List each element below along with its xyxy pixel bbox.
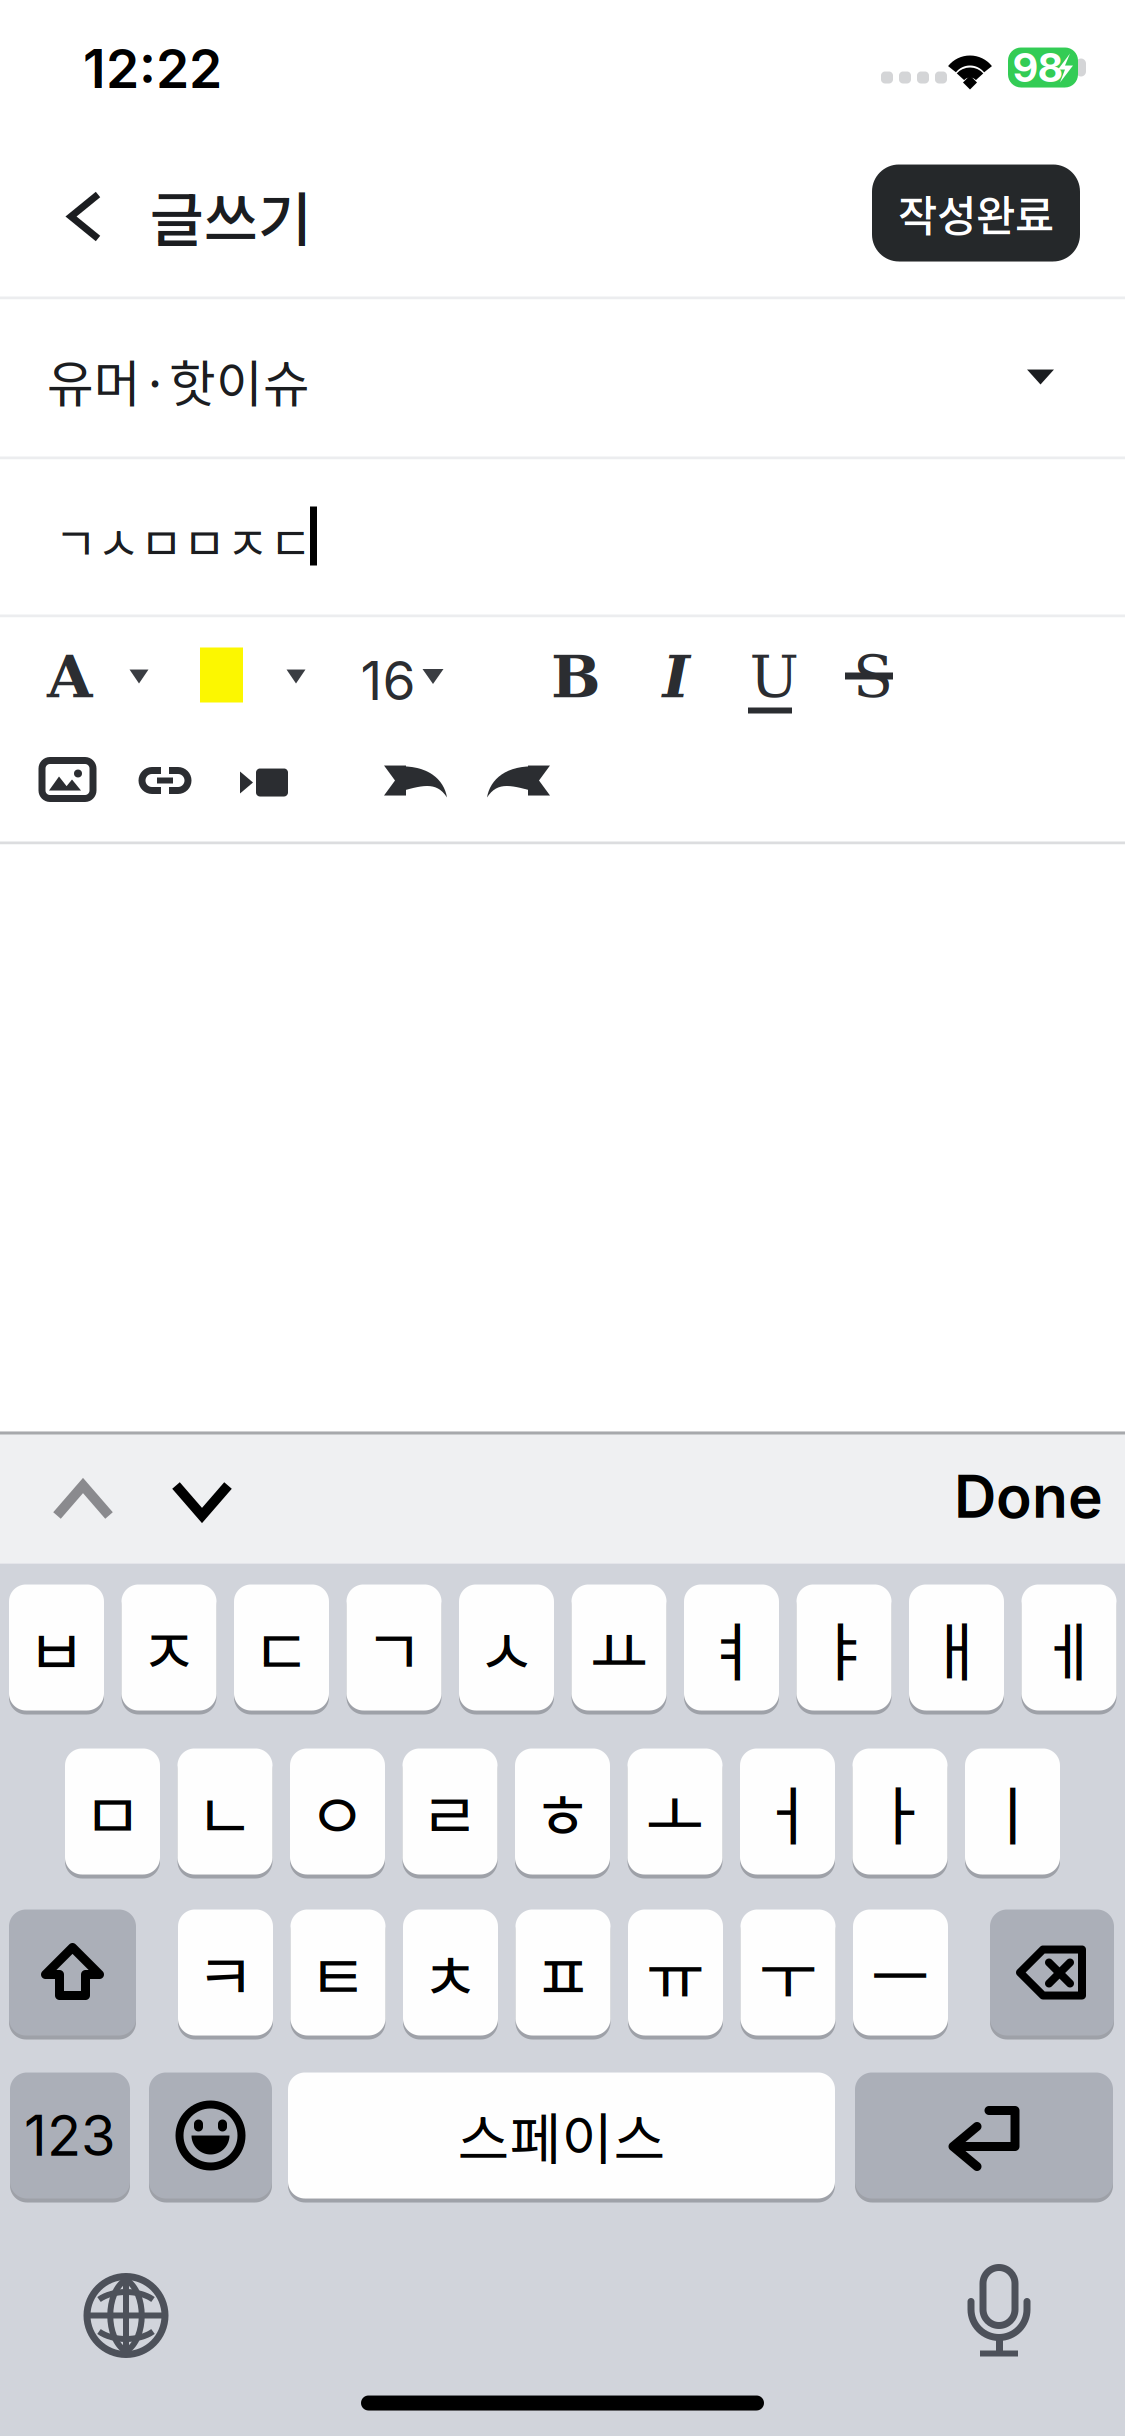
button[interactable]: Strikethrough: [845, 641, 901, 711]
button[interactable]: ㄱ: [346, 1584, 441, 1714]
button[interactable]: Size menu: [410, 653, 456, 699]
button[interactable]: ㅌ: [290, 1909, 385, 2039]
staticText: B: [551, 642, 601, 711]
button[interactable]: Insert link: [139, 767, 191, 793]
button[interactable]: Return: [855, 2072, 1113, 2202]
button[interactable]: ㅈ: [121, 1584, 216, 1714]
staticText: ㅂ: [27, 1601, 86, 1694]
staticText: ㅏ: [870, 1765, 929, 1858]
staticText: ㅛ: [589, 1601, 648, 1694]
button[interactable]: Font: [38, 640, 102, 712]
button[interactable]: Colour menu: [273, 653, 319, 699]
staticText: ㅣ: [983, 1765, 1042, 1858]
button[interactable]: ㅏ: [852, 1748, 947, 1878]
staticText: ㅌ: [308, 1926, 367, 2019]
staticText: 유머·핫이슈: [47, 344, 310, 417]
staticText: Done: [954, 1461, 1103, 1532]
staticText: 작성완료: [898, 182, 1054, 244]
button[interactable]: ㄴ: [177, 1748, 272, 1878]
button[interactable]: Italic: [653, 641, 699, 711]
button[interactable]: ㄷ: [234, 1584, 329, 1714]
staticText: 123: [24, 2102, 116, 2169]
button[interactable]: ㅗ: [627, 1748, 722, 1878]
button[interactable]: Shift: [9, 1909, 136, 2039]
staticText: ㅜ: [758, 1926, 817, 2019]
staticText: ㅊ: [421, 1926, 480, 2019]
staticText: 글쓰기: [150, 173, 312, 258]
staticText: S: [853, 642, 893, 711]
button[interactable]: ㅣ: [965, 1748, 1060, 1878]
staticText: ㅑ: [814, 1601, 873, 1694]
staticText: ㅋ: [196, 1926, 255, 2019]
staticText: ㄷ: [252, 1601, 311, 1694]
button[interactable]: ㅑ: [796, 1584, 891, 1714]
staticText: ㅐ: [927, 1601, 986, 1694]
button[interactable]: ㅔ: [1021, 1584, 1116, 1714]
button[interactable]: ㅂ: [9, 1584, 104, 1714]
button[interactable]: Font size: [357, 651, 419, 709]
button[interactable]: Space: [288, 2072, 835, 2202]
staticText: I: [662, 642, 689, 711]
button[interactable]: ㅁ: [65, 1748, 160, 1878]
button[interactable]: ㅛ: [571, 1584, 666, 1714]
button[interactable]: ㅓ: [740, 1748, 835, 1878]
button[interactable]: ㅎ: [515, 1748, 610, 1878]
button[interactable]: Insert photo: [42, 760, 93, 798]
button[interactable]: Back: [35, 166, 135, 266]
button[interactable]: Next field: [154, 1452, 250, 1548]
button[interactable]: Dictate: [941, 2253, 1057, 2369]
button[interactable]: Undo: [384, 764, 448, 798]
button[interactable]: Bold: [549, 641, 603, 711]
button[interactable]: Font menu: [116, 653, 162, 699]
button[interactable]: ㅜ: [740, 1909, 835, 2039]
button[interactable]: Redo: [486, 764, 550, 798]
button[interactable]: 유머·핫이슈: [0, 299, 1125, 456]
staticText: ㅕ: [702, 1601, 761, 1694]
staticText: 12:22: [83, 36, 222, 101]
staticText: ㅠ: [646, 1926, 705, 2019]
staticText: 16: [360, 648, 415, 713]
staticText: ㅁ: [83, 1765, 142, 1858]
staticText: A: [47, 642, 93, 711]
button[interactable]: Previous field: [35, 1452, 131, 1548]
staticText: ㅈ: [139, 1601, 198, 1694]
staticText: 스페이스: [457, 2095, 665, 2176]
staticText: ㄹ: [420, 1765, 479, 1858]
staticText: ㅓ: [758, 1765, 817, 1858]
button[interactable]: 작성완료: [872, 164, 1080, 261]
staticText: ㄴ: [195, 1765, 254, 1858]
button[interactable]: Insert video: [240, 768, 288, 796]
button[interactable]: Done: [954, 1461, 1114, 1531]
staticText: ㅗ: [645, 1765, 704, 1858]
staticText: ㄱㅅㅁㅁㅈㄷ: [54, 507, 312, 574]
button[interactable]: ㅍ: [515, 1909, 610, 2039]
staticText: ㅅ: [477, 1601, 536, 1694]
button[interactable]: ㄹ: [402, 1748, 497, 1878]
staticText: U: [749, 642, 798, 711]
staticText: ㅔ: [1039, 1601, 1098, 1694]
staticText: ㅎ: [533, 1765, 592, 1858]
button[interactable]: Next keyboard: [68, 2257, 184, 2373]
staticText: ㅍ: [533, 1926, 592, 2019]
staticText: ㄱ: [364, 1601, 423, 1694]
button[interactable]: ㅊ: [403, 1909, 498, 2039]
staticText: 98: [1013, 43, 1063, 92]
button[interactable]: ㅇ: [290, 1748, 385, 1878]
button[interactable]: ㅐ: [909, 1584, 1004, 1714]
button[interactable]: ㅅ: [459, 1584, 554, 1714]
button[interactable]: ㅠ: [628, 1909, 723, 2039]
button[interactable]: Numbers: [10, 2072, 130, 2202]
button[interactable]: ㅡ: [853, 1909, 948, 2039]
button[interactable]: Emoji: [149, 2072, 272, 2202]
button[interactable]: Delete: [990, 1909, 1114, 2039]
staticText: ㅡ: [871, 1926, 930, 2019]
button[interactable]: Underline: [746, 641, 802, 727]
button[interactable]: ㅋ: [178, 1909, 273, 2039]
staticText: ㅇ: [308, 1765, 367, 1858]
button[interactable]: ㅕ: [684, 1584, 779, 1714]
